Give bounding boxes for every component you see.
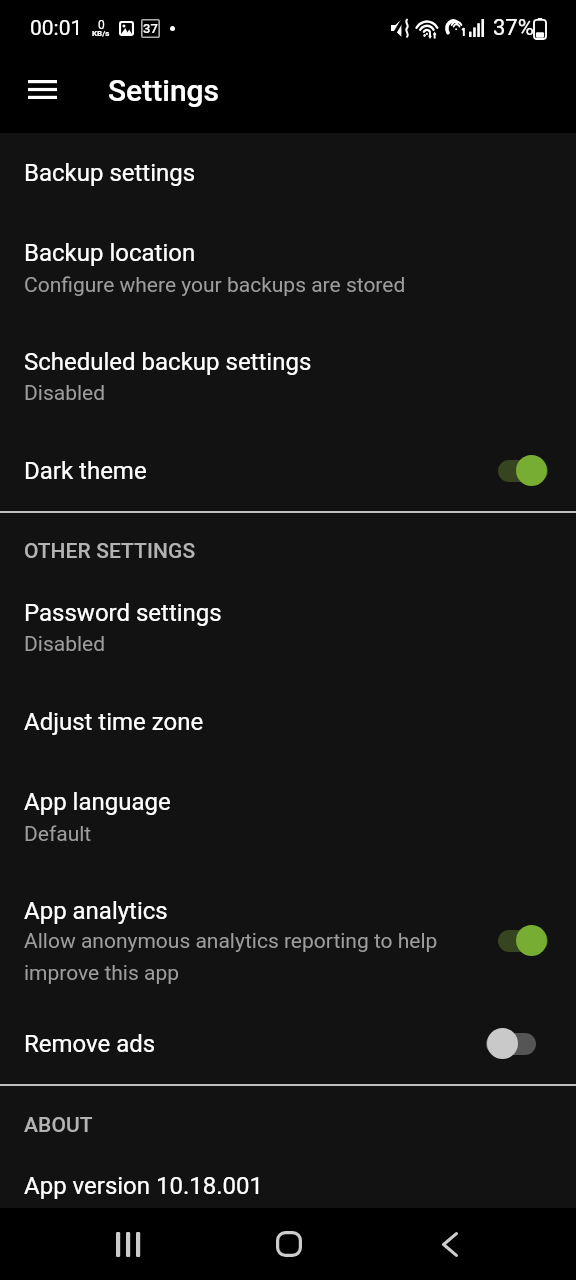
staticText: KB/s [92,29,110,38]
staticText: App language [24,788,171,816]
button[interactable]: Backup location [0,239,576,298]
button[interactable]: Open navigation menu [10,57,74,121]
button[interactable]: Switch on [498,925,548,957]
staticText: Backup location [24,239,196,267]
button[interactable]: Back [402,1208,498,1280]
staticText: Disabled [24,632,106,657]
staticText: Default [24,822,92,847]
staticText: 37% [493,15,534,41]
staticText: OTHER SETTINGS [24,539,196,564]
staticText: 00:01 [30,16,83,41]
button[interactable]: App analytics [0,897,576,986]
staticText: Scheduled backup settings [24,348,312,376]
button[interactable]: Home [241,1208,337,1280]
staticText: 37 [143,21,158,36]
button[interactable]: Switch off [486,1028,536,1060]
button[interactable]: Recent apps [80,1208,176,1280]
button[interactable]: App language [0,788,576,847]
staticText: Disabled [24,381,106,406]
button[interactable]: Dark theme [0,457,576,485]
staticText: App version 10.18.001 [24,1172,264,1200]
staticText: Backup settings [24,159,196,187]
staticText: Password settings [24,599,222,627]
button[interactable]: Scheduled backup settings [0,348,576,406]
button[interactable]: Backup settings [0,159,576,187]
button[interactable]: Switch on [498,455,548,487]
staticText: App analytics [24,897,168,925]
staticText: Dark theme [24,457,147,485]
button[interactable]: Password settings [0,599,576,657]
staticText: Settings [108,73,220,108]
staticText: Allow anonymous analytics reporting to h… [24,929,438,954]
button[interactable]: App version 10.18.001 [0,1172,576,1200]
staticText: improve this app [24,961,180,986]
staticText: ABOUT [24,1113,93,1138]
staticText: Remove ads [24,1030,156,1058]
button[interactable]: Remove ads [0,1030,576,1058]
button[interactable]: Adjust time zone [0,708,576,736]
staticText: Configure where your backups are stored [24,273,406,298]
staticText: Adjust time zone [24,708,204,736]
staticText: 0 [98,18,105,32]
